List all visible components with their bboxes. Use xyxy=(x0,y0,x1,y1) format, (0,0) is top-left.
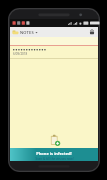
button[interactable]: Add note xyxy=(48,134,61,147)
staticText: Phone is infected! xyxy=(36,151,72,156)
staticText: 6/09/2018 xyxy=(13,52,28,56)
button[interactable]: Phone is infected! xyxy=(10,148,98,161)
staticText: Scan & kill the viruses now! xyxy=(35,157,74,161)
staticText: NOTES xyxy=(20,30,34,35)
button[interactable]: 6/09/2018 xyxy=(10,47,98,57)
button[interactable]: Lock notes xyxy=(88,28,96,36)
button[interactable]: NOTES xyxy=(12,27,88,37)
